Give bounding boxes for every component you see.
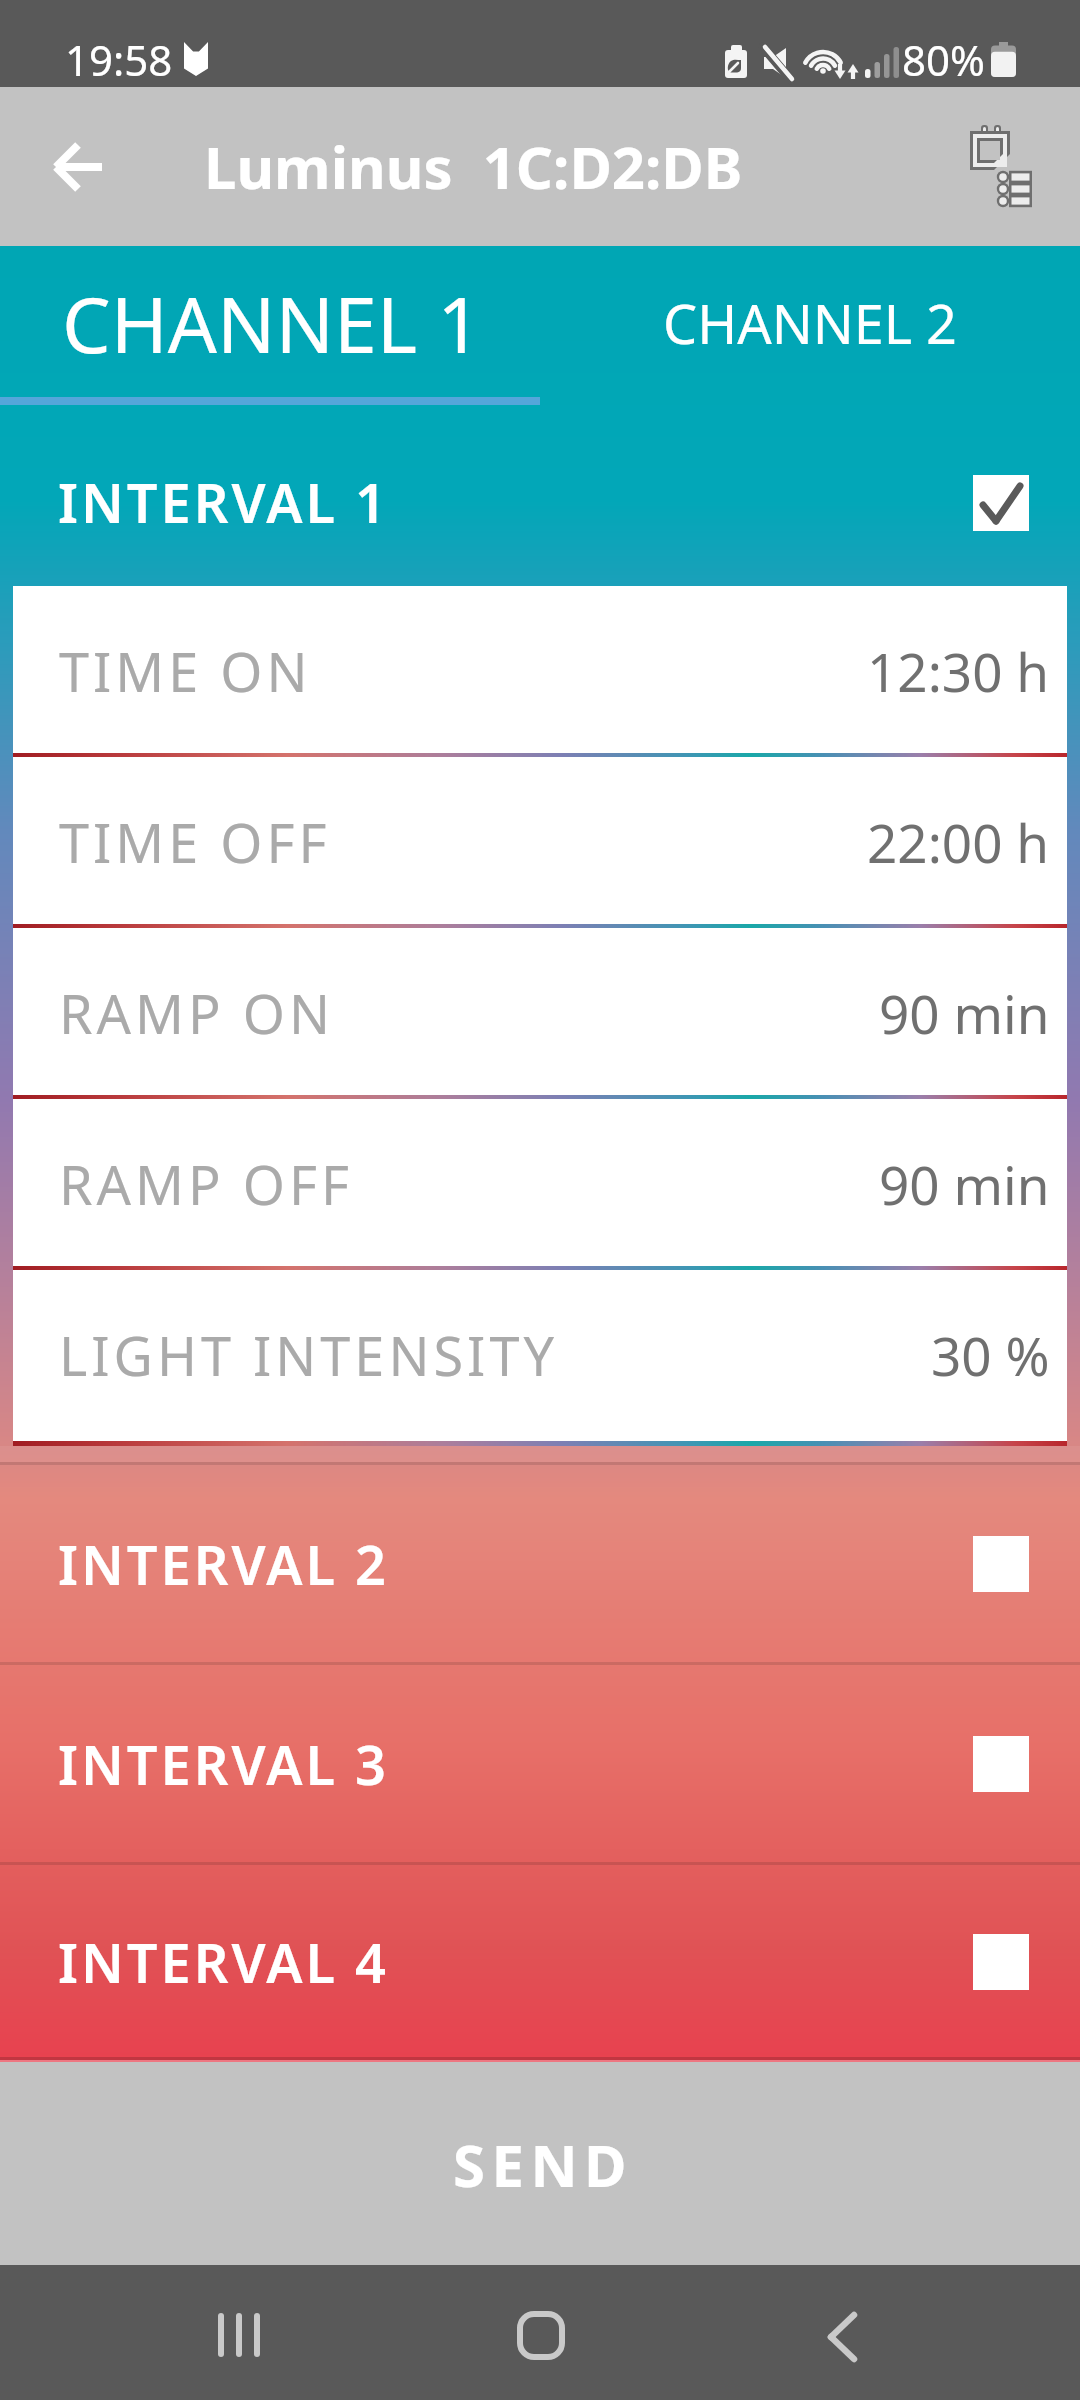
button[interactable]: SEND (0, 2062, 1080, 2265)
staticText: INTERVAL 3 (58, 1727, 389, 1801)
button[interactable]: RAMP OFF (13, 1099, 1067, 1270)
button[interactable]: CHANNEL 2 (540, 246, 1080, 404)
staticText: RAMP OFF (59, 1147, 354, 1221)
button[interactable]: INTERVAL 4 (0, 1862, 1080, 2057)
staticText: INTERVAL 2 (58, 1527, 389, 1601)
button[interactable]: Back (30, 117, 130, 217)
staticText: CHANNEL 1 (62, 271, 482, 376)
staticText: 30 % (931, 1319, 1050, 1391)
staticText: CHANNEL 2 (663, 286, 957, 360)
staticText: 22:00 h (867, 806, 1050, 878)
button[interactable]: Presets (962, 114, 1040, 209)
staticText: Luminus 1C:D2:DB (204, 127, 743, 206)
staticText: 80% (902, 31, 985, 88)
staticText: 90 min (879, 977, 1050, 1049)
button[interactable]: INTERVAL 1 (0, 404, 1080, 586)
staticText: TIME OFF (59, 805, 331, 879)
button[interactable]: TIME OFF (13, 757, 1067, 928)
button[interactable]: INTERVAL 2 (0, 1462, 1080, 1662)
button[interactable]: Recent apps (200, 2301, 276, 2365)
button[interactable]: CHANNEL 1 (0, 246, 540, 404)
button[interactable]: TIME ON (13, 586, 1067, 757)
staticText: 90 min (879, 1148, 1050, 1220)
button[interactable]: Back (808, 2301, 884, 2365)
button[interactable]: LIGHT INTENSITY (13, 1270, 1067, 1441)
staticText: SEND (453, 2125, 634, 2204)
staticText: 19:58 (65, 31, 173, 88)
staticText: 12:30 h (867, 635, 1050, 707)
staticText: RAMP ON (59, 976, 334, 1050)
staticText: INTERVAL 1 (58, 465, 389, 539)
button[interactable]: INTERVAL 3 (0, 1662, 1080, 1862)
staticText: LIGHT INTENSITY (59, 1318, 558, 1392)
button[interactable]: RAMP ON (13, 928, 1067, 1099)
staticText: INTERVAL 4 (58, 1925, 389, 1999)
staticText: TIME ON (59, 634, 312, 708)
button[interactable]: Home (504, 2301, 576, 2365)
